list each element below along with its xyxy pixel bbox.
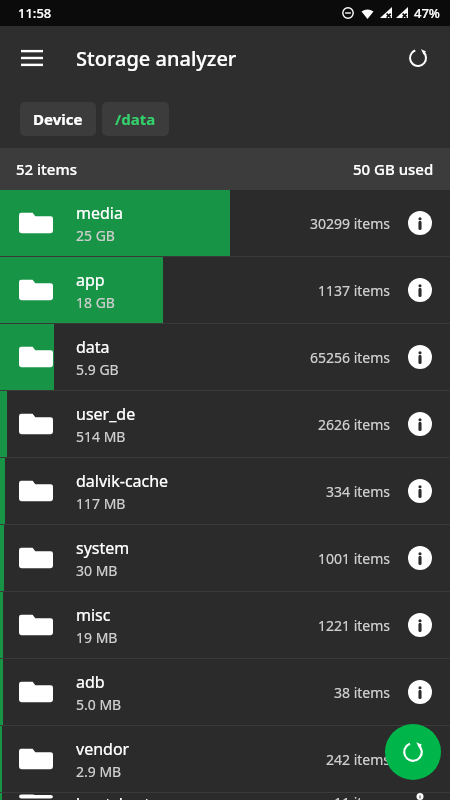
button[interactable]: Details for misc (400, 605, 440, 645)
staticText: 117 MB (76, 494, 126, 513)
staticText: 11 items (333, 793, 390, 800)
button[interactable]: Details for user_de (400, 404, 440, 444)
button[interactable]: app (0, 257, 450, 323)
button[interactable]: bootchart (0, 793, 450, 800)
staticText: 5.0 MB (76, 695, 122, 714)
staticText: misc (76, 604, 111, 626)
staticText: 30 MB (76, 561, 118, 580)
button[interactable]: Details for data (400, 337, 440, 377)
button[interactable]: media (0, 190, 450, 256)
staticText: 242 items (325, 750, 390, 769)
button[interactable]: misc (0, 592, 450, 658)
staticText: dalvik-cache (76, 470, 169, 492)
button[interactable]: Rescan storage (385, 724, 441, 780)
button[interactable]: Details for dalvik-cache (400, 471, 440, 511)
staticText: 38 items (333, 683, 390, 702)
button[interactable]: Details for system (400, 538, 440, 578)
button[interactable]: adb (0, 659, 450, 725)
staticText: app (76, 269, 105, 291)
staticText: Device (33, 109, 83, 129)
staticText: 1221 items (317, 616, 390, 635)
button[interactable]: Details for adb (400, 672, 440, 712)
staticText: media (76, 202, 123, 224)
staticText: bootchart (76, 793, 150, 800)
staticText: 52 items (16, 159, 77, 179)
staticText: 19 MB (76, 628, 118, 647)
button[interactable]: Refresh (394, 34, 442, 82)
staticText: 514 MB (76, 427, 126, 446)
button[interactable]: dalvik-cache (0, 458, 450, 524)
staticText: 47% (414, 4, 440, 22)
staticText: 2626 items (317, 415, 390, 434)
staticText: /data (115, 109, 156, 129)
button[interactable]: Details for media (400, 203, 440, 243)
staticText: vendor (76, 738, 130, 760)
staticText: Storage analyzer (76, 45, 237, 72)
button[interactable]: Details for vendor (400, 739, 440, 779)
button[interactable]: user_de (0, 391, 450, 457)
button[interactable]: system (0, 525, 450, 591)
staticText: 65256 items (309, 348, 390, 367)
button[interactable]: Open navigation menu (8, 34, 56, 82)
staticText: system (76, 537, 130, 559)
button[interactable]: vendor (0, 726, 450, 792)
staticText: 1137 items (317, 281, 390, 300)
staticText: 11:58 (18, 4, 52, 22)
staticText: 1001 items (317, 549, 390, 568)
button[interactable]: data (0, 324, 450, 390)
staticText: 50 GB used (353, 159, 434, 179)
staticText: 334 items (325, 482, 390, 501)
button[interactable]: /data (102, 102, 169, 136)
staticText: user_de (76, 403, 136, 425)
staticText: 18 GB (76, 293, 115, 312)
button[interactable]: Device (20, 102, 96, 136)
staticText: 25 GB (76, 226, 115, 245)
staticText: data (76, 336, 110, 358)
staticText: adb (76, 671, 105, 693)
staticText: 2.9 MB (76, 762, 122, 781)
button[interactable]: Details for bootchart (400, 793, 440, 800)
staticText: 30299 items (309, 214, 390, 233)
staticText: 5.9 GB (76, 360, 119, 379)
button[interactable]: Details for app (400, 270, 440, 310)
